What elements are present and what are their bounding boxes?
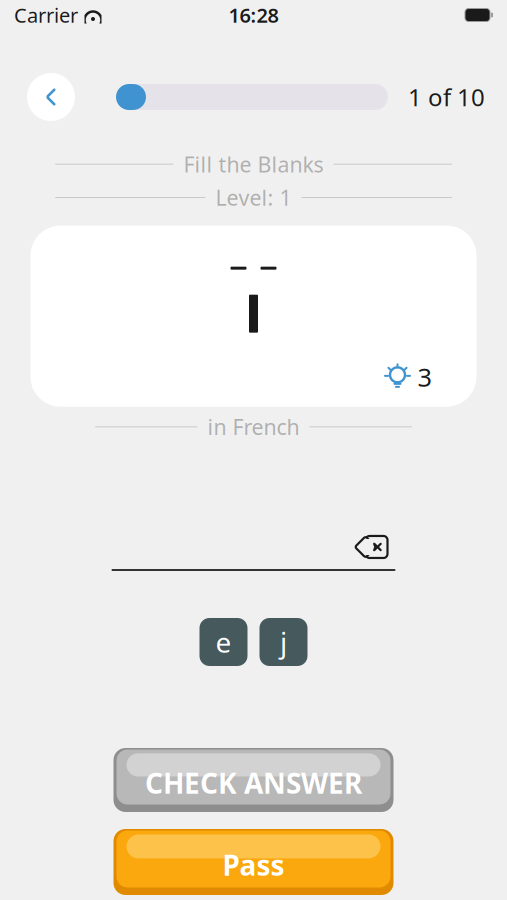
staticText: in French — [207, 413, 299, 441]
staticText: Pass — [222, 846, 284, 884]
button[interactable]: Pass — [113, 829, 393, 895]
button[interactable]: Delete — [355, 534, 389, 560]
staticText: 16:28 — [228, 2, 278, 28]
staticText: Level: 1 — [215, 183, 291, 212]
button[interactable]: Use hint, 3 remaining — [384, 360, 431, 394]
staticText: CHECK ANSWER — [145, 764, 362, 802]
button[interactable]: j — [259, 618, 307, 666]
staticText: Fill the Blanks — [183, 150, 323, 178]
staticText: Carrier — [14, 2, 78, 28]
button[interactable]: Back — [27, 73, 75, 121]
staticText: e — [215, 623, 231, 661]
staticText: 3 — [417, 360, 431, 394]
staticText: j — [280, 623, 287, 661]
staticText: 1 of 10 — [408, 81, 485, 113]
button[interactable]: e — [199, 618, 247, 666]
button[interactable]: CHECK ANSWER — [113, 748, 393, 812]
